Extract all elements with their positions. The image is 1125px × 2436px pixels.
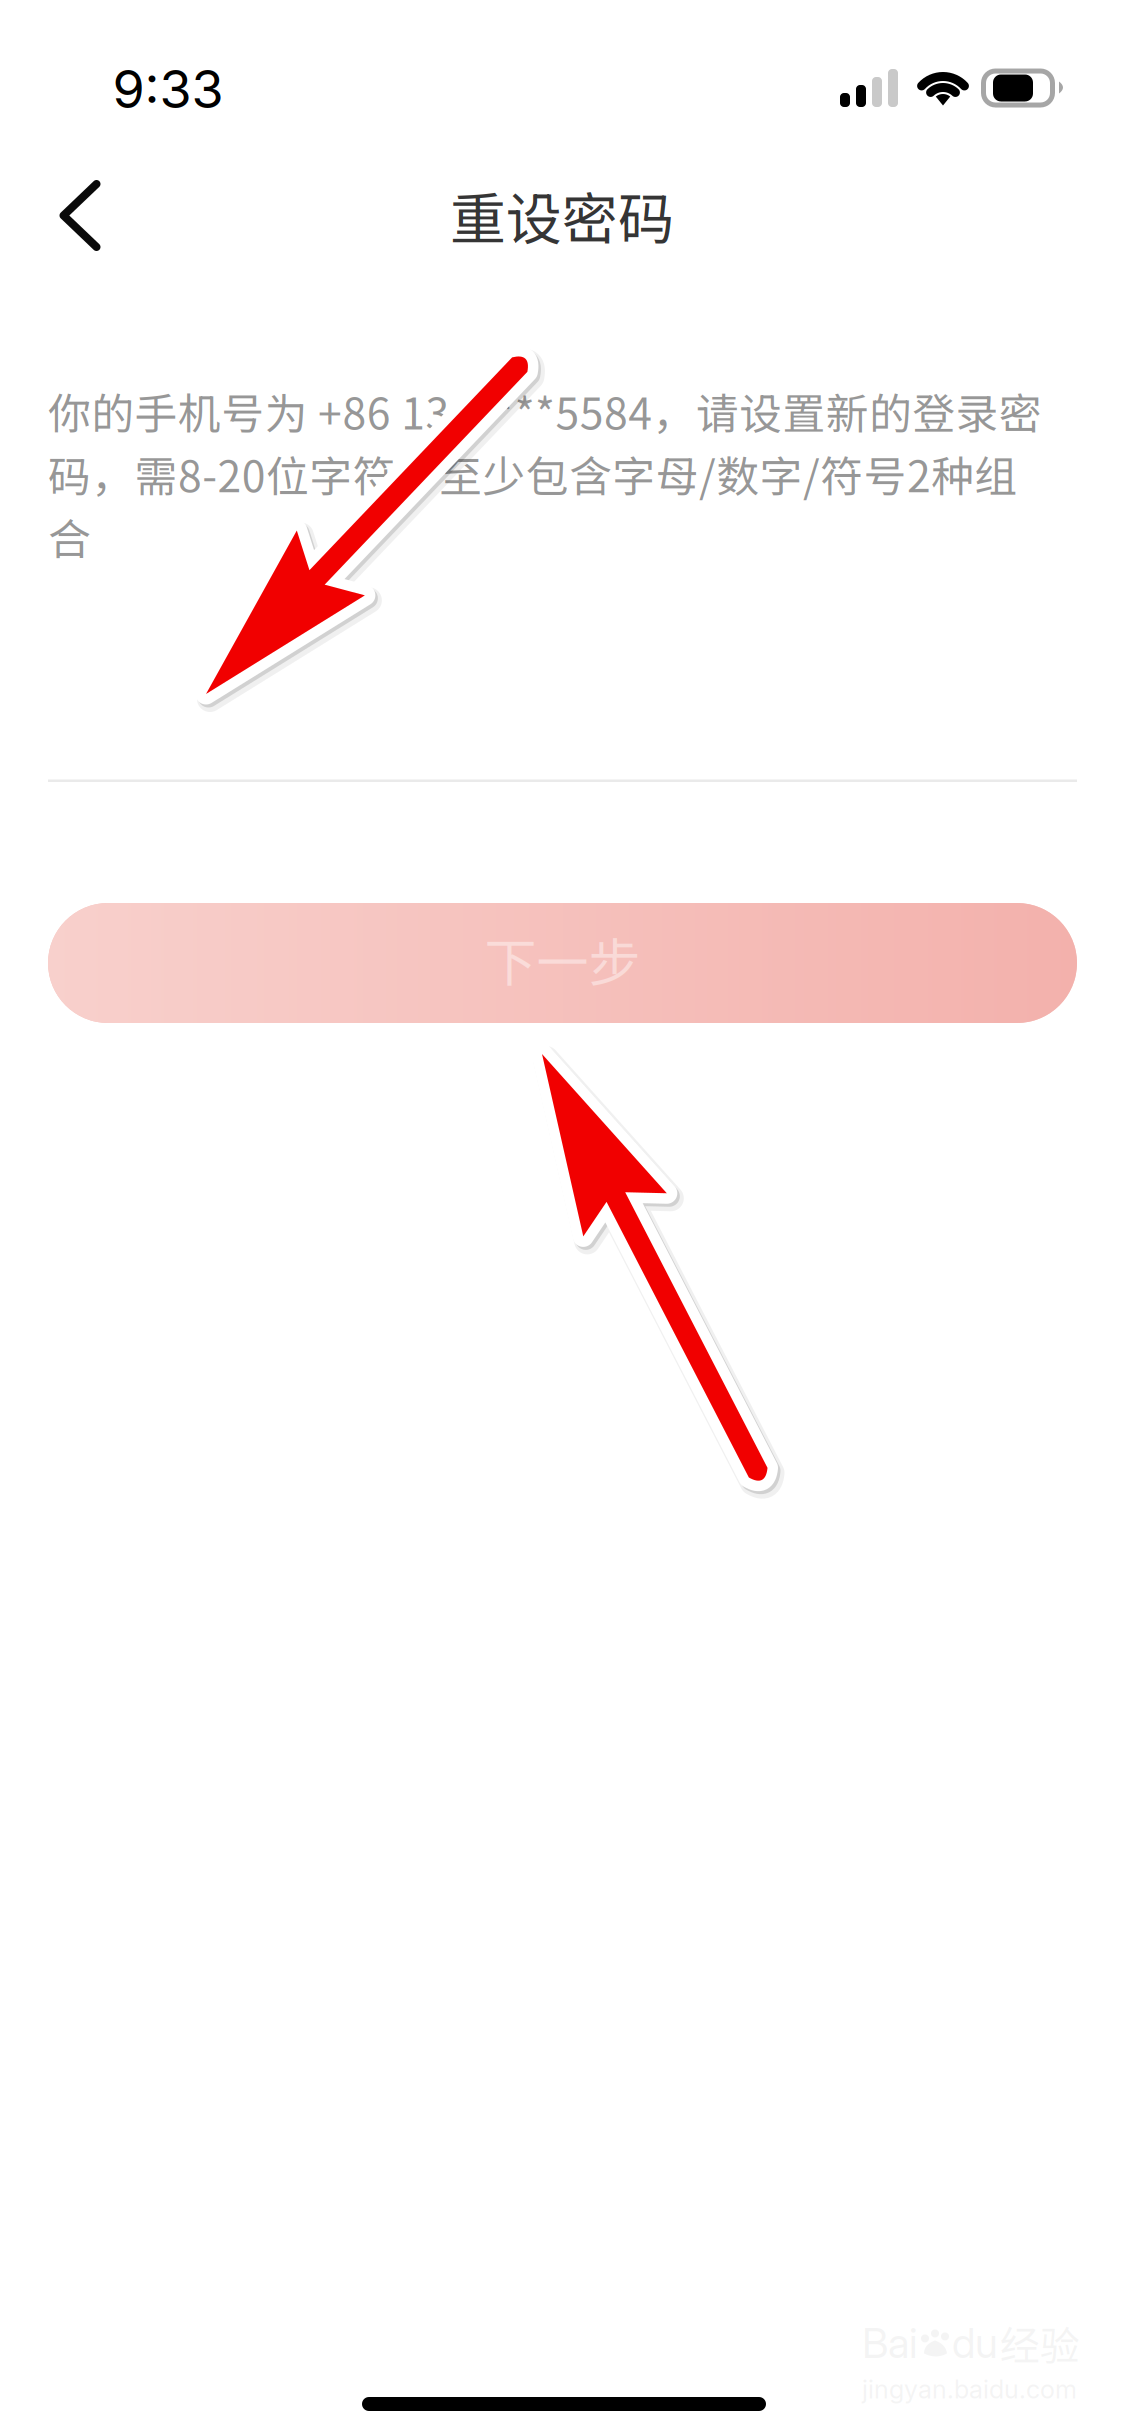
staticText: Bai: [862, 2318, 918, 2368]
staticText: 码，需8-20位字符，至少包含字母/数字/符号2种组: [48, 443, 1017, 505]
staticText: jingyan.baidu.com: [862, 2374, 1077, 2405]
staticText: 你的手机号为 +86 134****5584，请设置新的登录密: [48, 380, 1042, 442]
staticText: 下一步: [484, 921, 640, 997]
staticText: du: [952, 2318, 998, 2368]
button[interactable]: 下一步: [48, 903, 1077, 1023]
staticText: 重设密码: [450, 174, 674, 256]
staticText: 合: [48, 506, 91, 567]
staticText: 经验: [1000, 2314, 1080, 2372]
button[interactable]: Back: [15, 142, 144, 289]
staticText: 9:33: [112, 57, 223, 120]
